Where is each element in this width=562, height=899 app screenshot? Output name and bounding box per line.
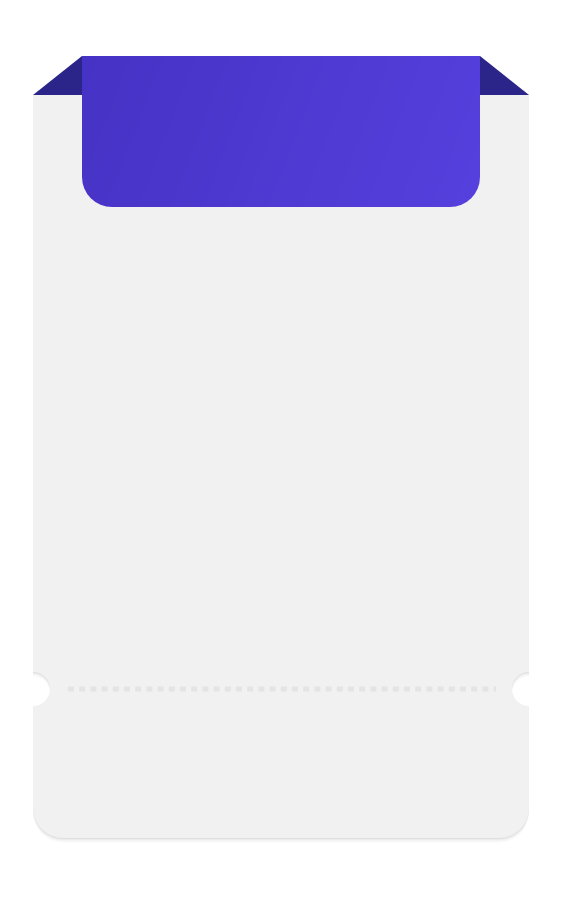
button[interactable]: Ticket card, loading <box>0 0 562 899</box>
